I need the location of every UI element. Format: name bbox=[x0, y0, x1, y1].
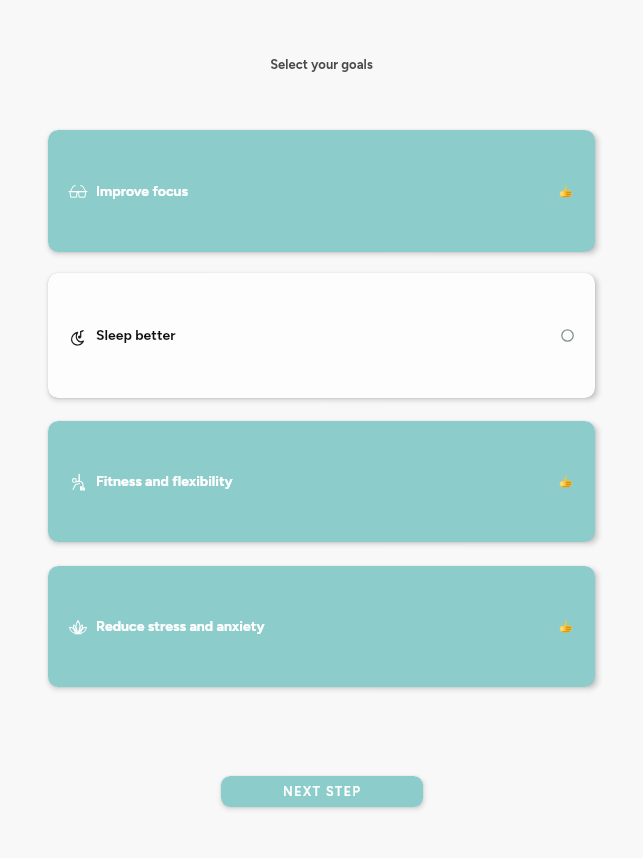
staticText: Sleep better bbox=[96, 327, 176, 344]
staticText: Select your goals bbox=[0, 57, 643, 73]
button[interactable]: Improve focus bbox=[48, 130, 595, 252]
staticText: Fitness and flexibility bbox=[96, 473, 233, 490]
other: Fitness and flexibility selected bbox=[233, 421, 574, 542]
other: Reduce stress and anxiety selected bbox=[265, 566, 574, 687]
other: Improve focus selected bbox=[189, 130, 574, 252]
button[interactable]: Fitness and flexibility bbox=[48, 421, 595, 542]
button[interactable]: Sleep better bbox=[48, 273, 595, 398]
staticText: Improve focus bbox=[96, 183, 189, 200]
staticText: Reduce stress and anxiety bbox=[96, 618, 265, 635]
staticText: NEXT STEP bbox=[283, 784, 362, 799]
other: Select Sleep better bbox=[176, 273, 574, 398]
button[interactable]: Reduce stress and anxiety bbox=[48, 566, 595, 687]
button[interactable]: NEXT STEP bbox=[221, 776, 423, 807]
